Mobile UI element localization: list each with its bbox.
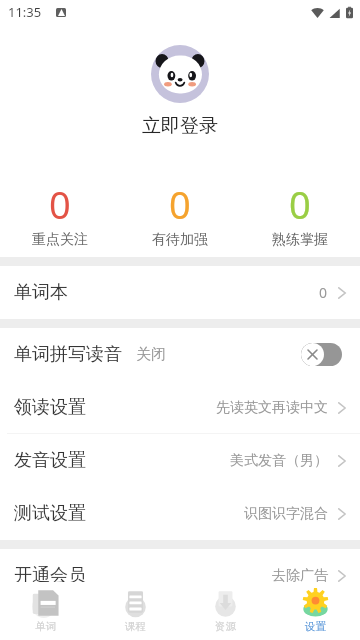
button[interactable]: 单词拼写读音开关 (301, 343, 342, 366)
staticText: 单词拼写读音 (14, 343, 122, 366)
button[interactable]: 开通会员 (0, 549, 360, 602)
staticText: 关闭 (136, 345, 166, 364)
staticText: 11:35 (8, 3, 42, 21)
button[interactable]: 单词本 (0, 266, 360, 319)
button[interactable]: 0 (120, 178, 240, 249)
button[interactable]: 0 (240, 178, 360, 249)
staticText: 0 (319, 283, 328, 302)
staticText: 开通会员 (14, 564, 86, 587)
button[interactable]: 设置 (270, 582, 360, 640)
staticText: 熟练掌握 (272, 231, 328, 249)
staticText: 去除广告 (272, 567, 328, 585)
staticText: 识图识字混合 (244, 505, 328, 523)
staticText: 设置 (305, 620, 326, 633)
button[interactable]: 发音设置 (0, 434, 360, 487)
staticText: 单词 (35, 620, 56, 633)
staticText: 立即登录 (142, 114, 218, 138)
staticText: 有待加强 (152, 231, 208, 249)
staticText: 0 (169, 178, 191, 230)
staticText: 测试设置 (14, 502, 86, 525)
staticText: 领读设置 (14, 396, 86, 419)
button[interactable]: 课程 (90, 582, 180, 640)
staticText: 发音设置 (14, 449, 86, 472)
button[interactable]: 头像，立即登录 (151, 45, 209, 103)
button[interactable]: 资源 (180, 582, 270, 640)
staticText: 单词本 (14, 281, 68, 304)
staticText: 0 (289, 178, 311, 230)
button[interactable]: 领读设置 (0, 381, 360, 434)
staticText: 美式发音（男） (230, 452, 328, 470)
staticText: 先读英文再读中文 (216, 399, 328, 417)
staticText: 课程 (125, 620, 146, 633)
staticText: 0 (49, 178, 71, 230)
staticText: 资源 (215, 620, 236, 633)
button[interactable]: 测试设置 (0, 487, 360, 540)
button[interactable]: 单词 (0, 582, 90, 640)
staticText: 重点关注 (32, 231, 88, 249)
button[interactable]: 0 (0, 178, 120, 249)
